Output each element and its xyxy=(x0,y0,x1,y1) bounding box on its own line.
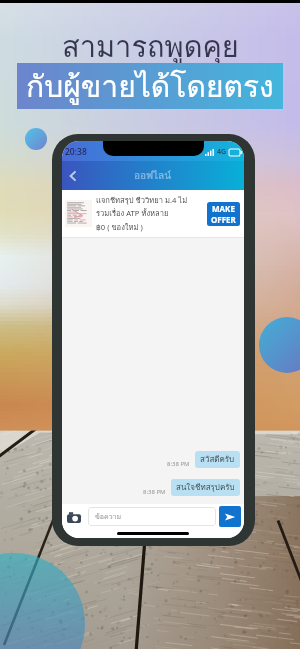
staticText: 20:38 xyxy=(65,146,87,158)
button[interactable]: Send xyxy=(219,506,241,527)
button[interactable]: Back xyxy=(62,161,84,190)
staticText: ข้อความ xyxy=(95,511,122,522)
staticText: OFFER xyxy=(211,214,236,225)
button[interactable]: MAKE xyxy=(207,202,240,226)
staticText: ฿0 ( ของใหม่ ) xyxy=(96,221,143,233)
button[interactable]: แจกชีทสรุป ชีววิทยา ม.4 ไม่ xyxy=(62,190,244,237)
staticText: กับผู้ขายได้โดยตรง xyxy=(26,63,274,109)
staticText: MAKE xyxy=(212,203,235,214)
staticText: 8:38 PM xyxy=(143,488,166,496)
staticText: รวมเรื่อง ATP ทั้งหลาย xyxy=(96,207,169,219)
staticText: สามารถพูดคุย xyxy=(62,24,239,70)
button[interactable]: ข้อความ xyxy=(88,507,216,526)
staticText: สนใจชีทสรุปครับ xyxy=(176,481,235,494)
staticText: สวัสดีครับ xyxy=(200,453,235,466)
staticText: 4G xyxy=(217,147,227,157)
staticText: แจกชีทสรุป ชีววิทยา ม.4 ไม่ xyxy=(96,194,188,206)
staticText: 8:38 PM xyxy=(167,460,190,468)
staticText: ออฟไลน์ xyxy=(134,168,172,184)
button[interactable]: Camera xyxy=(65,508,83,526)
